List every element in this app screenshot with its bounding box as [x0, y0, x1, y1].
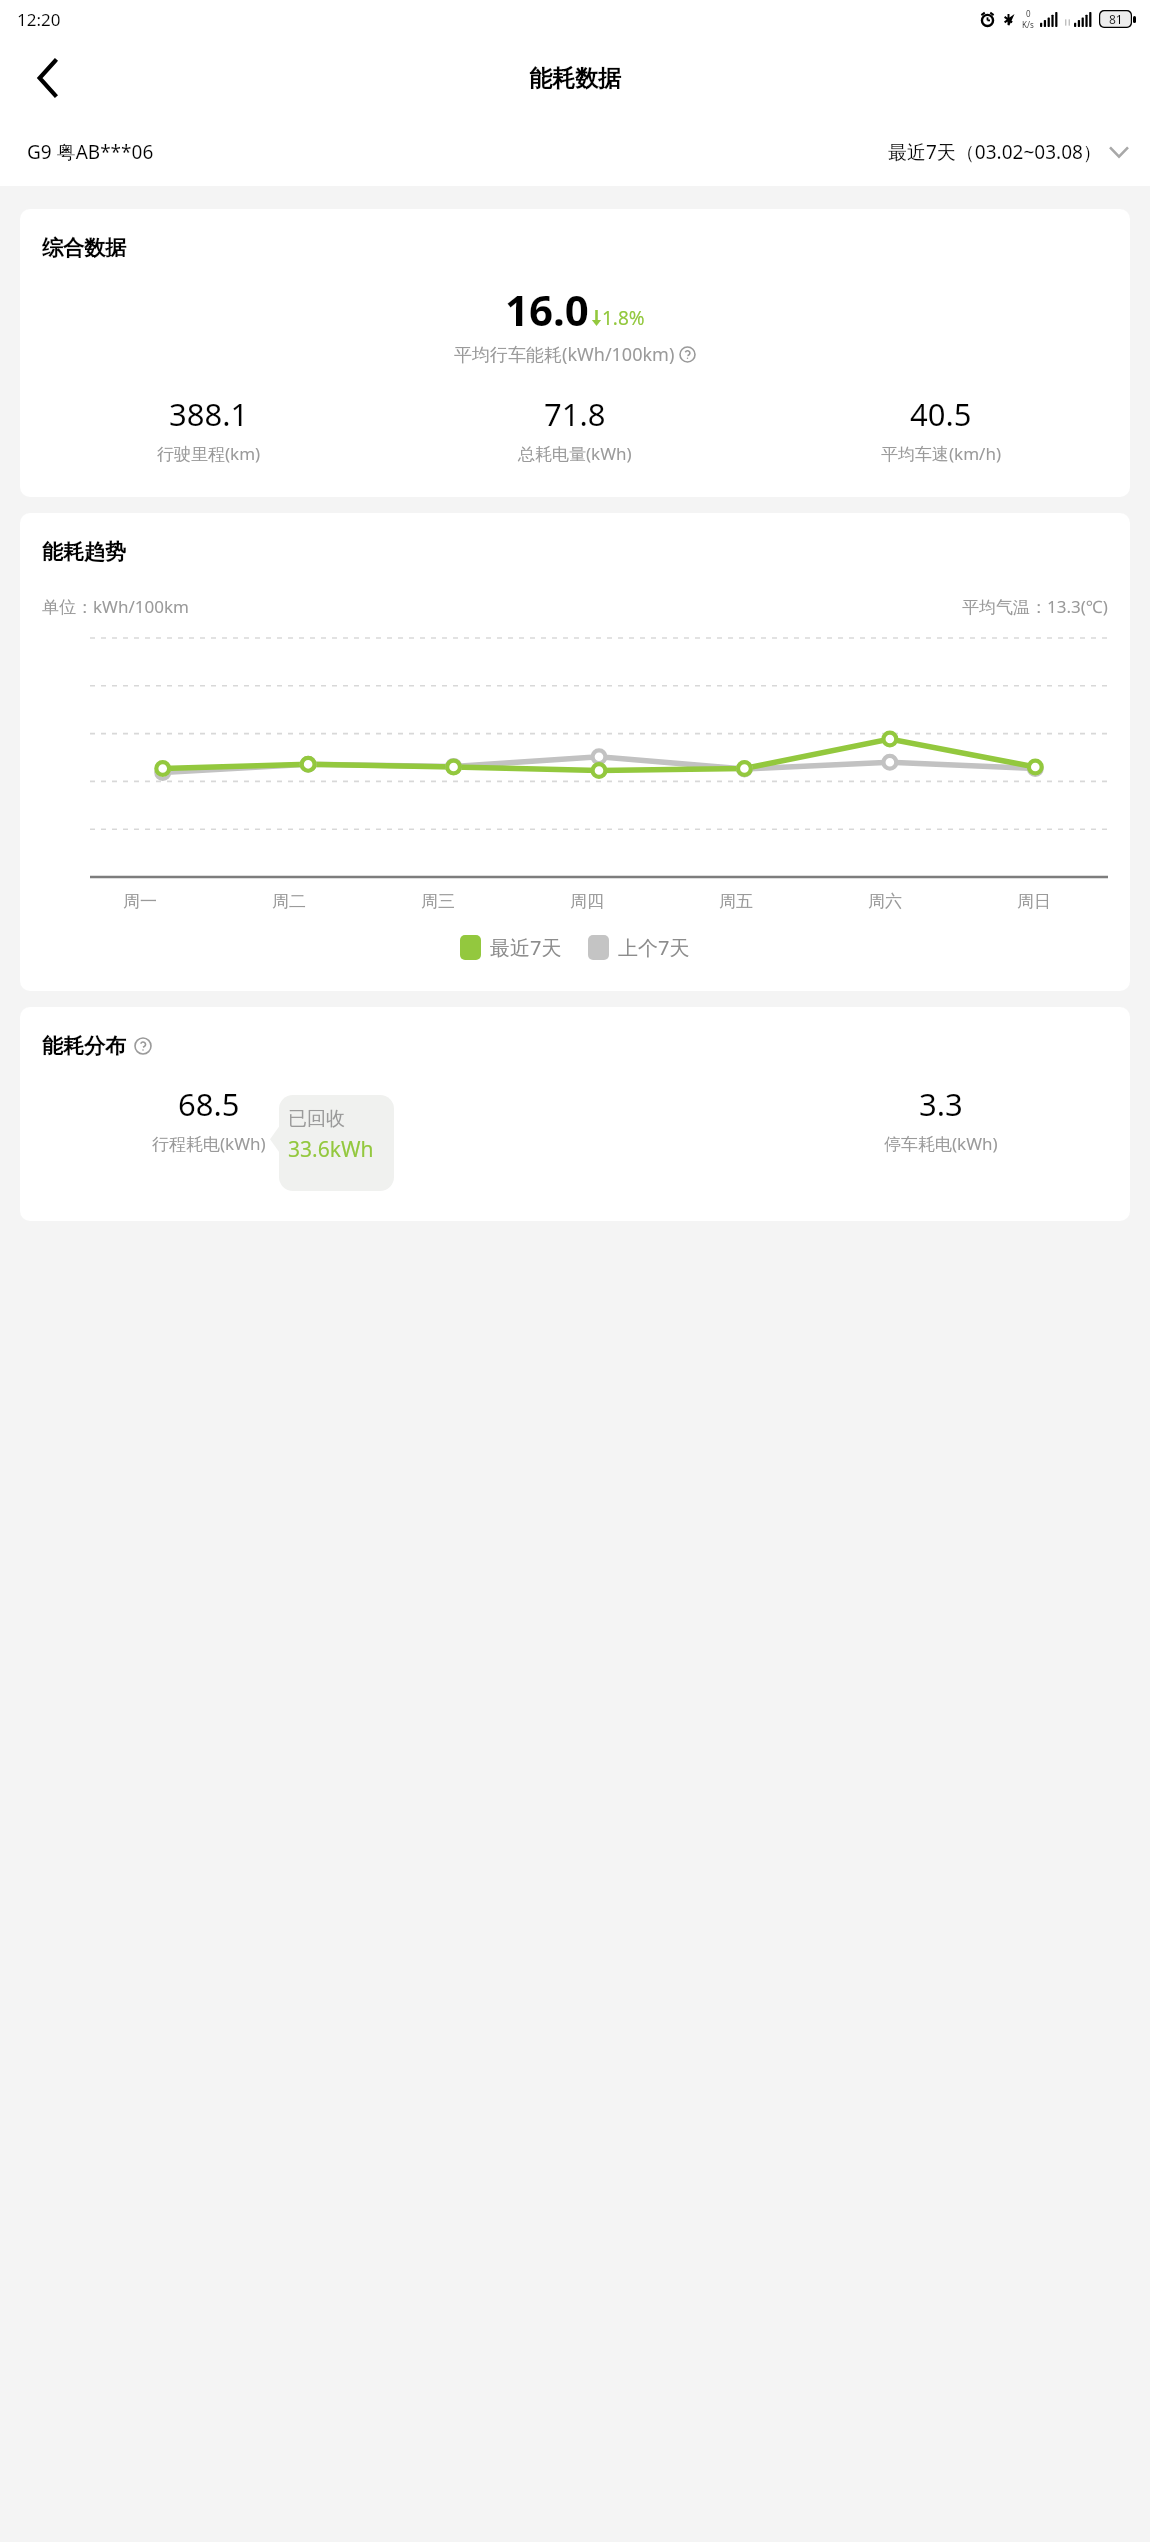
staticText: 行程耗电(kWh) — [152, 1132, 266, 1155]
staticText: 3.3 — [919, 1083, 963, 1125]
staticText: 周三 — [421, 891, 455, 912]
staticText: 综合数据 — [42, 235, 126, 261]
button[interactable]: 最近7天（03.02~03.08） — [888, 139, 1128, 165]
button[interactable]: Back — [22, 52, 74, 104]
staticText: 停车耗电(kWh) — [884, 1132, 998, 1155]
staticText: 单位：kWh/100km — [42, 595, 189, 618]
staticText: 已回收 — [288, 1107, 345, 1131]
staticText: G9 粤AB***06 — [27, 139, 154, 165]
staticText: 上个7天 — [618, 934, 690, 961]
staticText: 周六 — [868, 891, 902, 912]
staticText: 0 — [1026, 8, 1031, 19]
staticText: 周五 — [719, 891, 753, 912]
staticText: 81 — [1109, 11, 1123, 27]
staticText: 12:20 — [17, 8, 61, 31]
staticText: 行驶里程(km) — [157, 442, 261, 465]
staticText: 最近7天 — [490, 934, 562, 961]
staticText: 最近7天（03.02~03.08） — [888, 139, 1102, 165]
staticText: 40.5 — [910, 393, 972, 435]
staticText: 平均气温：13.3(℃) — [962, 595, 1108, 618]
staticText: 能耗数据 — [529, 64, 621, 93]
staticText: 能耗趋势 — [42, 539, 126, 565]
staticText: 能耗分布 — [42, 1033, 126, 1059]
staticText: 16.0 — [505, 281, 589, 338]
staticText: 周四 — [570, 891, 604, 912]
staticText: K/s — [1022, 19, 1034, 30]
staticText: 周一 — [123, 891, 157, 912]
staticText: 周二 — [272, 891, 306, 912]
staticText: 平均行车能耗(kWh/100km) — [454, 342, 675, 367]
staticText: 周日 — [1017, 891, 1051, 912]
staticText: 总耗电量(kWh) — [518, 442, 632, 465]
staticText: 33.6kWh — [288, 1135, 374, 1164]
staticText: 1.8% — [602, 305, 645, 331]
staticText: 71.8 — [544, 393, 606, 435]
staticText: 平均车速(km/h) — [881, 442, 1002, 465]
staticText: 388.1 — [169, 393, 249, 435]
staticText: 68.5 — [178, 1083, 240, 1125]
